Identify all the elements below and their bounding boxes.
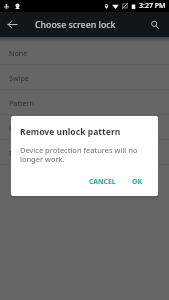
button[interactable]: Swipe bbox=[0, 65, 169, 90]
staticText: PIN bbox=[9, 123, 22, 133]
staticText: Choose screen lock bbox=[35, 19, 116, 31]
button[interactable]: OK bbox=[127, 174, 147, 189]
button[interactable]: Search bbox=[142, 12, 167, 37]
staticText: Device protection features will no longe… bbox=[20, 145, 144, 164]
button[interactable]: Pattern bbox=[0, 90, 169, 115]
button[interactable]: Password bbox=[0, 140, 169, 165]
staticText: 3:27 PM bbox=[139, 1, 166, 11]
button[interactable]: PIN bbox=[0, 115, 169, 140]
button[interactable]: CANCEL bbox=[84, 174, 121, 189]
staticText: Remove unlock pattern bbox=[20, 126, 121, 138]
staticText: Swipe bbox=[9, 73, 29, 83]
button[interactable]: None bbox=[0, 40, 169, 65]
staticText: CANCEL bbox=[89, 177, 116, 186]
staticText: None bbox=[9, 48, 28, 58]
staticText: Pattern bbox=[9, 98, 35, 108]
staticText: OK bbox=[132, 177, 142, 186]
staticText: Password bbox=[9, 148, 42, 158]
button[interactable]: Navigate up bbox=[0, 12, 25, 37]
